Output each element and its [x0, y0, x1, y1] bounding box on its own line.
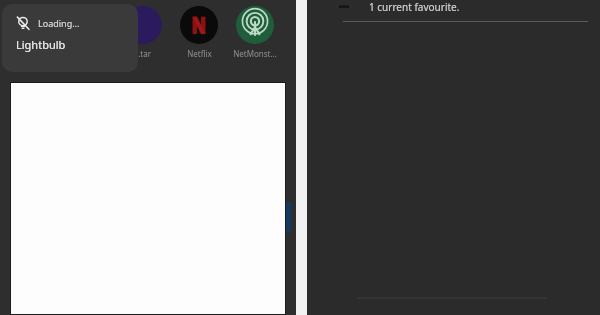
other: Lightbulb off: [16, 16, 30, 30]
button[interactable]: Netflix: [176, 6, 222, 59]
staticText: 1 current favourite.: [369, 0, 460, 14]
button[interactable]: Menu: [307, 0, 600, 14]
staticText: Netflix: [187, 48, 212, 59]
button[interactable]: Avatar app: [120, 6, 166, 59]
staticText: Loading...: [38, 17, 80, 29]
staticText: NetMonst...: [233, 48, 277, 59]
other: Menu: [339, 2, 349, 12]
staticText: ..tar: [136, 48, 151, 59]
button[interactable]: NetMonster: [232, 6, 278, 59]
staticText: Lightbulb: [16, 37, 66, 52]
button[interactable]: Lightbulb off: [2, 4, 138, 72]
